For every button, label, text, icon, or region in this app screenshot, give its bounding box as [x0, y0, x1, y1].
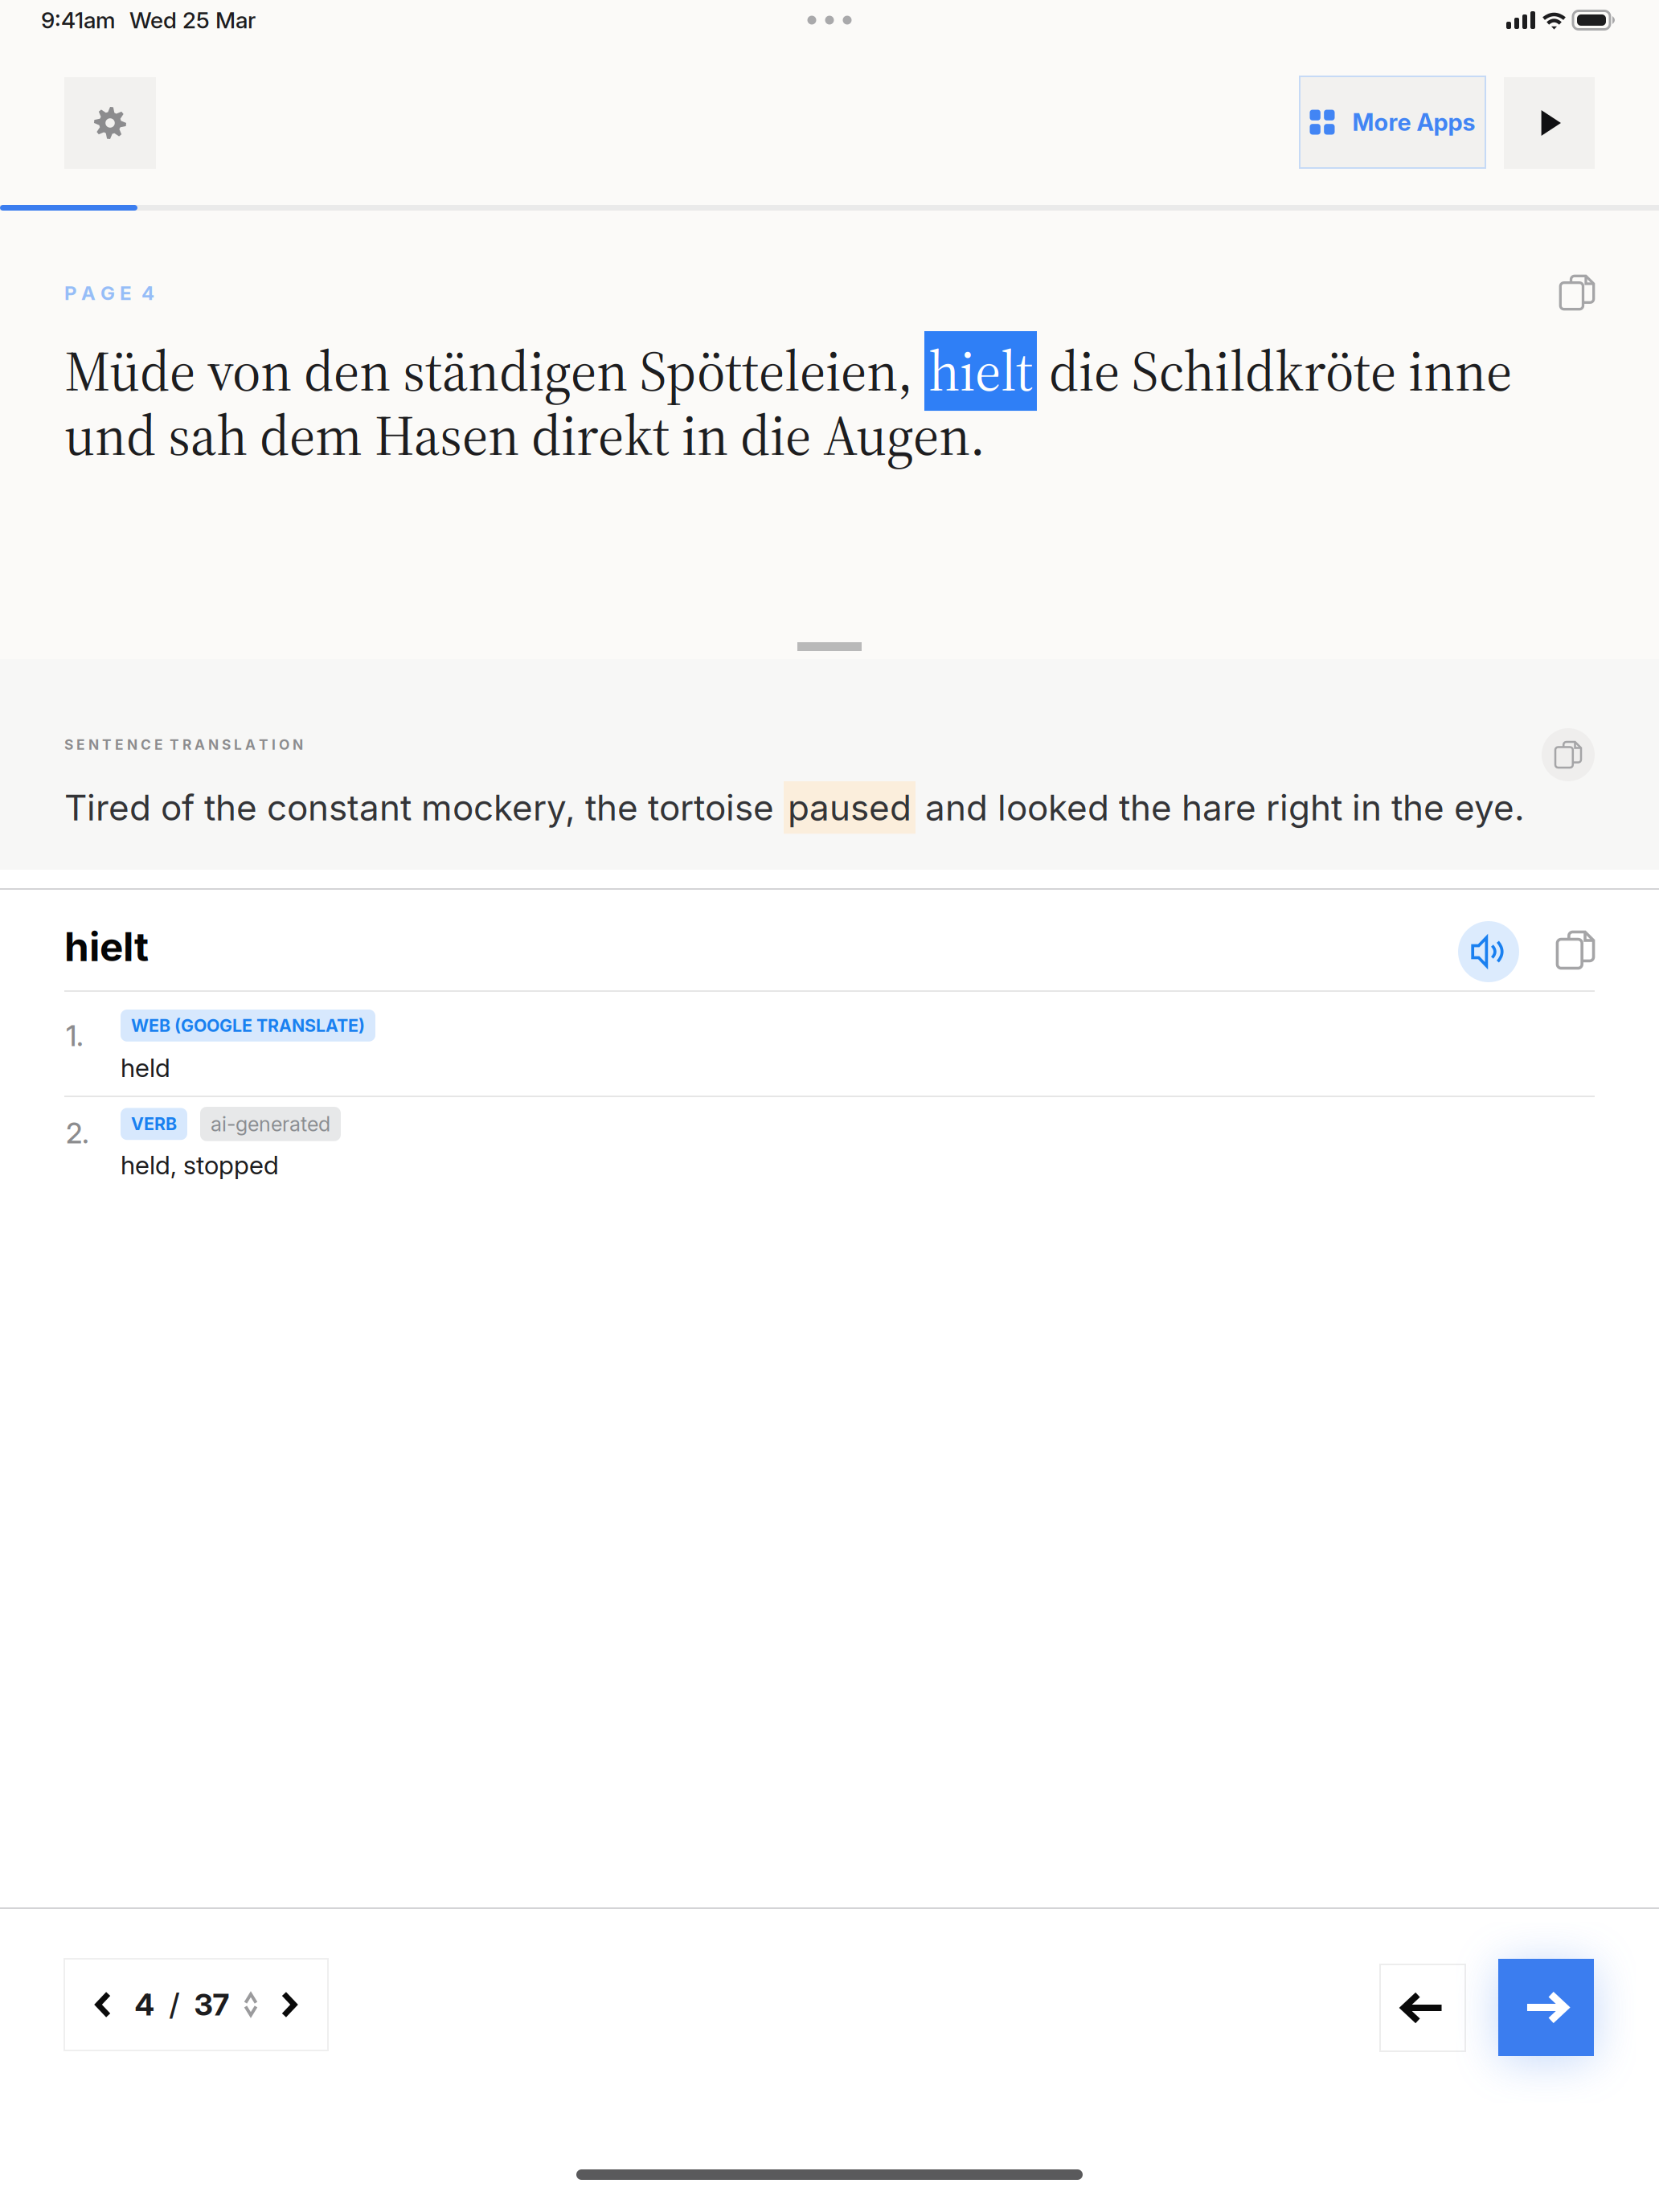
staticText: VERB: [131, 1114, 177, 1134]
staticText: 37: [194, 1986, 229, 2023]
staticText: 9:41am: [41, 7, 116, 34]
staticText: paused: [788, 786, 911, 829]
button[interactable]: Play: [1504, 77, 1595, 169]
button[interactable]: Copy translation: [1542, 728, 1595, 781]
staticText: and looked the hare right in the eye.: [916, 786, 1525, 829]
staticText: hielt: [64, 923, 149, 971]
staticText: /: [169, 1986, 180, 2023]
staticText: Wed 25 Mar: [129, 7, 256, 34]
staticText: held: [121, 1052, 170, 1083]
staticText: 1.: [66, 1019, 84, 1053]
staticText: und sah dem Hasen direkt in die Augen.: [64, 397, 985, 474]
staticText: S E N T E N C E T R A N S L A T I O N: [64, 736, 303, 753]
staticText: P A G E 4: [64, 281, 154, 305]
staticText: Müde von den ständigen Spötteleien,: [64, 333, 924, 409]
staticText: 2.: [66, 1116, 89, 1150]
staticText: held, stopped: [121, 1149, 279, 1181]
staticText: More Apps: [1352, 108, 1475, 136]
staticText: 4: [135, 1986, 155, 2023]
button[interactable]: Pronounce word: [1458, 921, 1519, 982]
button[interactable]: Copy word: [1556, 931, 1595, 969]
button[interactable]: Previous page: [1380, 1964, 1465, 2051]
staticText: ai-generated: [211, 1112, 330, 1136]
staticText: die Schildkröte inne: [1037, 333, 1512, 409]
staticText: hielt: [928, 333, 1033, 409]
button[interactable]: Next page: [1498, 1959, 1594, 2056]
button[interactable]: More Apps: [1300, 76, 1485, 168]
button[interactable]: Previous sentence: [72, 1960, 135, 2050]
staticText: WEB (GOOGLE TRANSLATE): [131, 1015, 365, 1036]
button[interactable]: Next sentence: [258, 1960, 320, 2050]
button[interactable]: Settings: [64, 77, 156, 169]
staticText: Tired of the constant mockery, the torto…: [64, 786, 784, 829]
button[interactable]: Copy sentence: [1559, 275, 1595, 310]
